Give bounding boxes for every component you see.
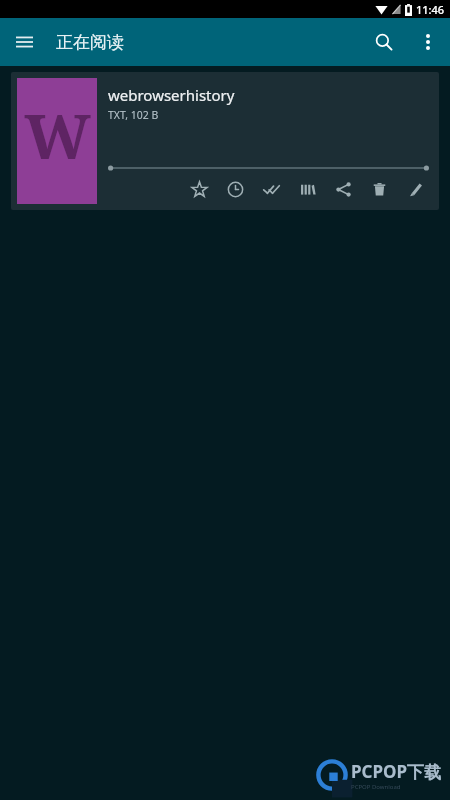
button[interactable]: More options [408,22,448,62]
staticText: W [24,93,91,177]
button[interactable]: Search [360,18,408,66]
staticText: 11:46 [416,2,445,17]
staticText: webrowserhistory [108,85,235,105]
button[interactable]: Reading history [217,175,253,203]
button[interactable]: Mark as read [253,175,289,203]
button[interactable]: Delete [361,175,397,203]
staticText: 正在阅读 [56,32,124,53]
button[interactable]: Open navigation drawer [0,18,48,66]
button[interactable]: Edit [397,175,433,203]
button[interactable]: Favorite [181,175,217,203]
staticText: PCPOP下载 [351,760,442,783]
button[interactable]: Share [325,175,361,203]
staticText: PCPOP Download [351,783,401,791]
button[interactable]: Move to shelf [289,175,325,203]
staticText: TXT, 102 B [108,108,159,122]
button[interactable]: W [11,72,439,210]
